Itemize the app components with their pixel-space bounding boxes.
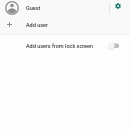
button[interactable]: Settings [110,0,126,16]
staticText: Guest [26,5,41,11]
button[interactable]: Add users from lock screen [0,34,130,58]
staticText: Add users from lock screen [26,43,93,49]
staticText: Add users from lock screen [26,43,93,49]
staticText: Guest [26,5,41,11]
button[interactable]: Add user [0,16,130,33]
button[interactable]: Add users from lock screen toggle [100,39,124,53]
staticText: Add user [26,22,48,28]
button[interactable]: Guest [0,0,130,16]
staticText: Add user [26,22,48,28]
